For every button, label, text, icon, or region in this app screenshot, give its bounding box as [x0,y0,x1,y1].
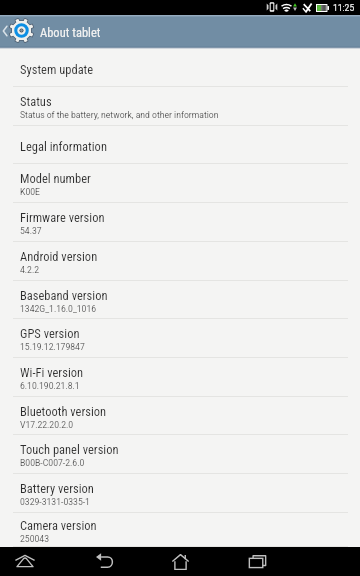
button[interactable]: Home [140,547,216,576]
staticText: 54.37 [20,226,42,236]
staticText: System update [20,62,94,77]
staticText: Baseband version [20,288,108,303]
button[interactable]: Hide navigation bar [0,547,64,576]
staticText: Firmware version [20,210,105,225]
staticText: GPS version [20,326,80,341]
staticText: Wi-Fi version [20,365,84,380]
staticText: Status [20,94,52,109]
staticText: 15.19.12.179847 [20,342,85,352]
staticText: Battery version [20,481,94,496]
button[interactable]: Touch panel version [0,435,360,474]
staticText: 0329-3131-0335-1 [20,497,90,507]
button[interactable]: Model number [0,164,360,203]
staticText: 4.2.2 [20,265,40,275]
staticText: Bluetooth version [20,404,107,419]
staticText: 250043 [20,534,49,544]
button[interactable]: Android version [0,242,360,281]
staticText: B00B-C007-2.6.0 [20,458,85,468]
button[interactable]: Recent apps [216,547,292,576]
staticText: 6.10.190.21.8.1 [20,381,80,391]
staticText: Legal information [20,139,107,154]
staticText: K00E [20,187,40,197]
button[interactable]: GPS version [0,319,360,358]
button[interactable]: Navigate up [0,15,37,49]
staticText: V17.22.20.2.0 [20,420,74,430]
button[interactable]: Firmware version [0,203,360,242]
staticText: 11:25 [333,3,355,13]
staticText: Android version [20,249,98,264]
staticText: Model number [20,171,91,186]
button[interactable]: Camera version [0,513,360,547]
button[interactable]: System update [0,49,360,87]
staticText: 1342G_1.16.0_1016 [20,304,97,314]
button[interactable]: Battery version [0,474,360,513]
staticText: Status of the battery, network, and othe… [20,110,219,120]
button[interactable]: Wi-Fi version [0,358,360,397]
button[interactable]: Legal information [0,126,360,164]
button[interactable]: Baseband version [0,281,360,319]
button[interactable]: Status [0,87,360,126]
staticText: About tablet [40,25,101,40]
button[interactable]: Back [64,547,140,576]
staticText: Touch panel version [20,442,119,457]
button[interactable]: Bluetooth version [0,397,360,435]
staticText: Camera version [20,518,97,533]
